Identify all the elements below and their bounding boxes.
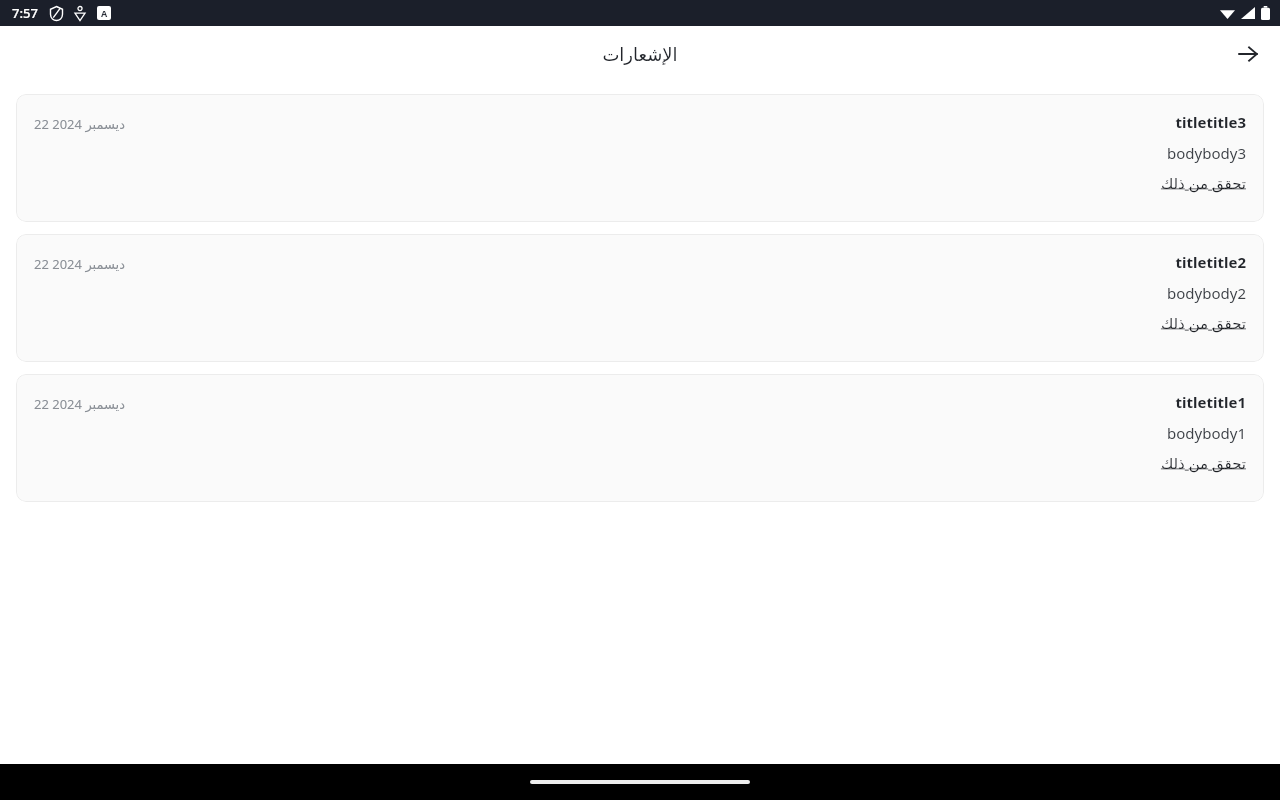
- staticText: titletitle3: [1175, 112, 1246, 132]
- staticText: 22 ديسمبر 2024: [34, 115, 125, 133]
- button[interactable]: 22 ديسمبر 2024: [16, 234, 1264, 362]
- staticText: bodybody1: [1167, 423, 1246, 443]
- staticText: الإشعارات: [602, 44, 678, 65]
- button[interactable]: تحقق من ذلك: [1160, 453, 1246, 473]
- staticText: titletitle2: [1175, 252, 1246, 272]
- staticText: bodybody2: [1167, 283, 1246, 303]
- staticText: تحقق من ذلك: [1160, 313, 1246, 333]
- staticText: bodybody3: [1167, 143, 1246, 163]
- staticText: 22 ديسمبر 2024: [34, 255, 125, 273]
- staticText: تحقق من ذلك: [1160, 173, 1246, 193]
- button[interactable]: تحقق من ذلك: [1160, 313, 1246, 333]
- button[interactable]: 22 ديسمبر 2024: [16, 94, 1264, 222]
- staticText: A: [101, 7, 108, 19]
- button[interactable]: Back: [1228, 34, 1268, 74]
- button[interactable]: 22 ديسمبر 2024: [16, 374, 1264, 502]
- staticText: 7:57: [12, 4, 38, 22]
- staticText: titletitle1: [1175, 392, 1246, 412]
- staticText: 22 ديسمبر 2024: [34, 395, 125, 413]
- button[interactable]: تحقق من ذلك: [1160, 173, 1246, 193]
- staticText: تحقق من ذلك: [1160, 453, 1246, 473]
